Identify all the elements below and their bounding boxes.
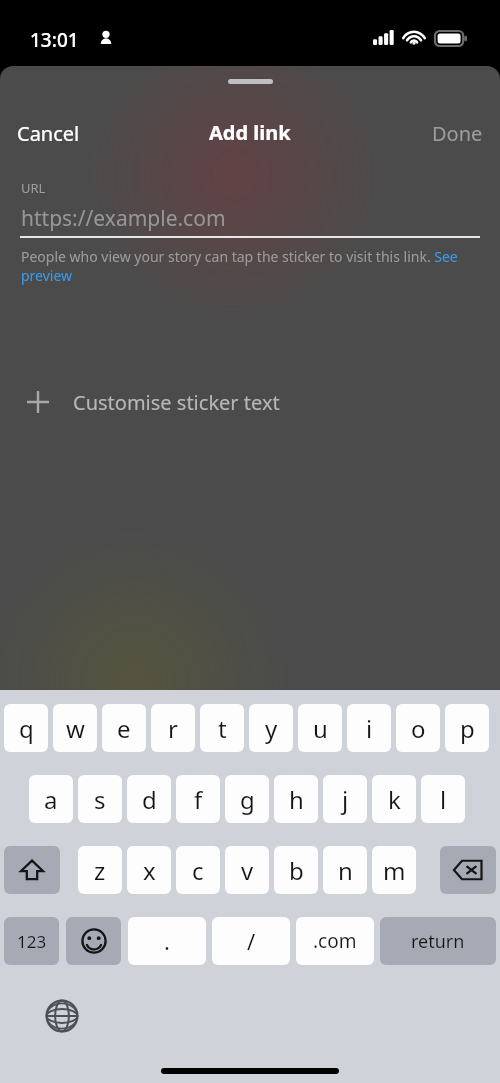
staticText: q: [19, 712, 34, 745]
button[interactable]: Cancel: [6, 116, 91, 148]
button[interactable]: a: [29, 775, 73, 823]
staticText: j: [342, 783, 349, 816]
staticText: v: [241, 854, 254, 887]
button[interactable]: .: [128, 917, 206, 965]
button[interactable]: l: [421, 775, 465, 823]
staticText: Done: [432, 120, 483, 144]
button[interactable]: n: [323, 846, 367, 894]
button[interactable]: m: [372, 846, 416, 894]
staticText: a: [44, 783, 58, 816]
staticText: k: [388, 783, 401, 816]
button[interactable]: Emoji: [66, 917, 121, 965]
button[interactable]: Change keyboard: [40, 994, 84, 1038]
staticText: 123: [17, 930, 47, 953]
staticText: return: [411, 929, 465, 954]
button[interactable]: k: [372, 775, 416, 823]
button[interactable]: c: [176, 846, 220, 894]
button[interactable]: j: [323, 775, 367, 823]
staticText: c: [192, 854, 204, 887]
staticText: .: [164, 926, 170, 956]
button[interactable]: v: [225, 846, 269, 894]
staticText: y: [265, 712, 278, 745]
staticText: 13:01: [30, 27, 79, 53]
button[interactable]: return: [380, 917, 496, 965]
staticText: /: [247, 926, 256, 956]
staticText: Add link: [209, 119, 291, 146]
staticText: t: [218, 712, 227, 745]
button[interactable]: d: [127, 775, 171, 823]
button[interactable]: q: [4, 704, 48, 752]
staticText: h: [289, 783, 304, 816]
staticText: e: [117, 712, 131, 745]
staticText: r: [168, 712, 178, 745]
button[interactable]: Customise sticker text: [0, 376, 500, 428]
button[interactable]: Backspace: [440, 846, 496, 894]
staticText: d: [142, 783, 157, 816]
staticText: x: [143, 854, 156, 887]
staticText: u: [313, 712, 328, 745]
staticText: i: [366, 712, 373, 745]
button[interactable]: e: [102, 704, 146, 752]
button[interactable]: g: [225, 775, 269, 823]
staticText: l: [440, 783, 447, 816]
staticText: s: [94, 783, 106, 816]
button[interactable]: https://example.com: [0, 200, 500, 240]
button[interactable]: o: [396, 704, 440, 752]
button[interactable]: i: [347, 704, 391, 752]
staticText: Customise sticker text: [73, 389, 280, 416]
staticText: f: [194, 783, 203, 816]
button[interactable]: w: [53, 704, 97, 752]
button[interactable]: y: [249, 704, 293, 752]
staticText: b: [289, 854, 304, 887]
button[interactable]: 123: [4, 917, 59, 965]
staticText: .com: [313, 928, 357, 954]
button[interactable]: r: [151, 704, 195, 752]
staticText: w: [66, 712, 85, 745]
staticText: https://example.com: [21, 204, 226, 233]
button[interactable]: s: [78, 775, 122, 823]
button[interactable]: /: [212, 917, 290, 965]
staticText: g: [240, 783, 255, 816]
staticText: URL: [21, 179, 46, 197]
button[interactable]: Shift: [4, 846, 60, 894]
staticText: o: [411, 712, 426, 745]
staticText: Cancel: [17, 120, 80, 144]
staticText: m: [383, 854, 406, 887]
button[interactable]: b: [274, 846, 318, 894]
staticText: p: [460, 712, 475, 745]
button[interactable]: p: [445, 704, 489, 752]
button[interactable]: u: [298, 704, 342, 752]
button[interactable]: .com: [296, 917, 374, 965]
button[interactable]: h: [274, 775, 318, 823]
button[interactable]: Done: [421, 116, 494, 148]
button[interactable]: x: [127, 846, 171, 894]
button[interactable]: z: [78, 846, 122, 894]
staticText: z: [94, 854, 106, 887]
button[interactable]: t: [200, 704, 244, 752]
staticText: People who view your story can tap the s…: [21, 247, 471, 285]
staticText: n: [338, 854, 353, 887]
button[interactable]: f: [176, 775, 220, 823]
